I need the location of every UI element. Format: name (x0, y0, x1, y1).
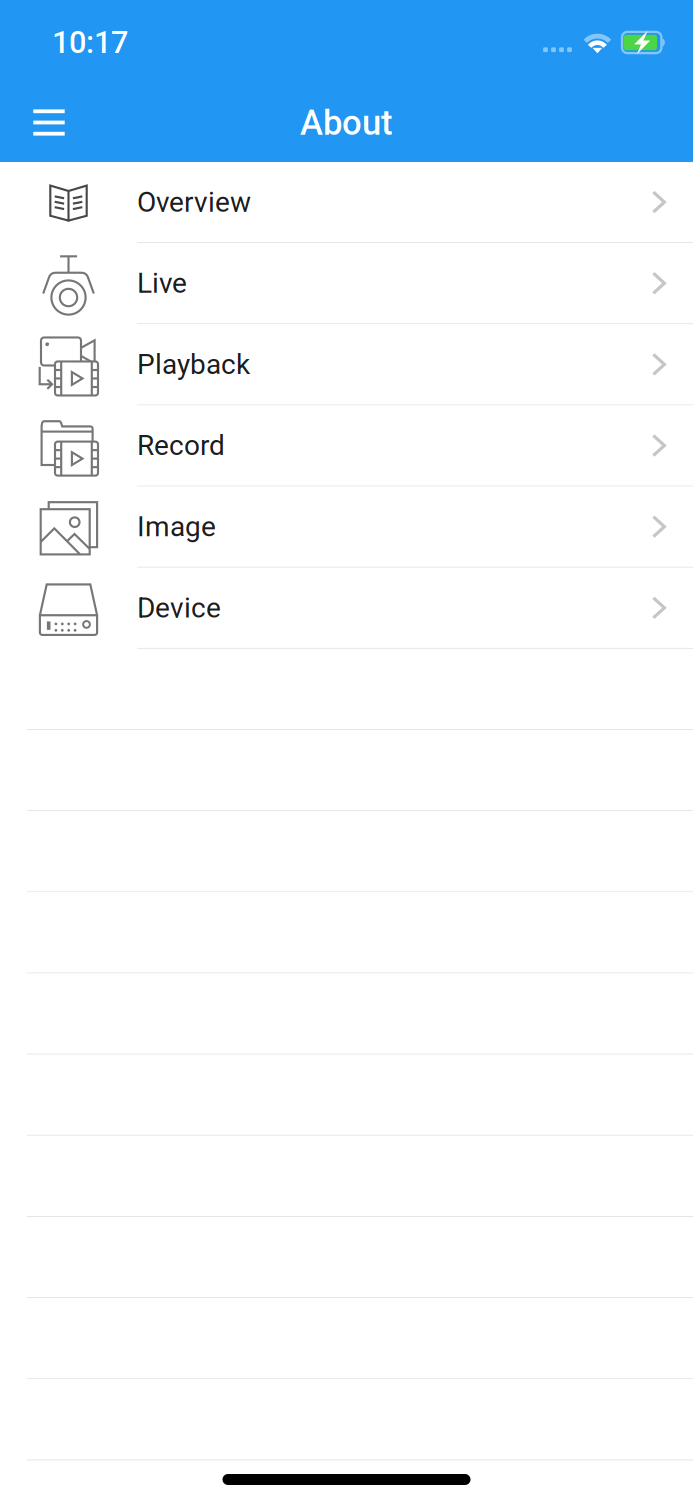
staticText: About (300, 103, 393, 143)
staticText: Playback (137, 348, 250, 381)
button[interactable]: Record (0, 405, 693, 487)
button[interactable]: Device (0, 568, 693, 649)
button[interactable]: Image (0, 487, 693, 568)
button[interactable]: Menu (18, 85, 80, 149)
button[interactable]: Live (0, 243, 693, 324)
staticText: Image (137, 510, 216, 543)
staticText: Record (137, 429, 225, 462)
button[interactable]: Playback (0, 324, 693, 405)
staticText: Live (137, 267, 187, 300)
staticText: Device (137, 591, 221, 624)
staticText: 10:17 (52, 24, 128, 60)
staticText: Overview (137, 186, 251, 218)
button[interactable]: Overview (0, 162, 693, 243)
